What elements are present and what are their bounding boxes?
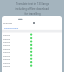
- staticText: Translate text in 133 langs: [16, 2, 49, 6]
- staticText: Dansk: [3, 64, 10, 67]
- button[interactable]: [2, 36, 62, 39]
- button[interactable]: [2, 64, 62, 67]
- staticText: for travelling: [24, 12, 41, 16]
- staticText: Downloaded: [4, 26, 19, 29]
- button[interactable]: [2, 54, 62, 57]
- button[interactable]: [2, 33, 62, 36]
- staticText: Settings: [3, 21, 13, 24]
- staticText: Dansk: [3, 43, 10, 46]
- button[interactable]: [2, 57, 62, 60]
- button[interactable]: [2, 47, 62, 50]
- staticText: Dansk: [3, 54, 10, 57]
- staticText: Dansk: [3, 57, 10, 60]
- staticText: Dansk: [3, 47, 10, 50]
- button[interactable]: [2, 50, 62, 53]
- staticText: Dansk: [3, 50, 10, 53]
- staticText: Dansk: [3, 36, 10, 39]
- button[interactable]: [2, 60, 62, 63]
- staticText: Dansk: [3, 40, 10, 43]
- staticText: Dansk: [3, 33, 10, 36]
- staticText: Dansk: [3, 61, 10, 64]
- button[interactable]: [2, 43, 62, 46]
- staticText: including offline download: [15, 7, 49, 11]
- button[interactable]: [2, 40, 62, 43]
